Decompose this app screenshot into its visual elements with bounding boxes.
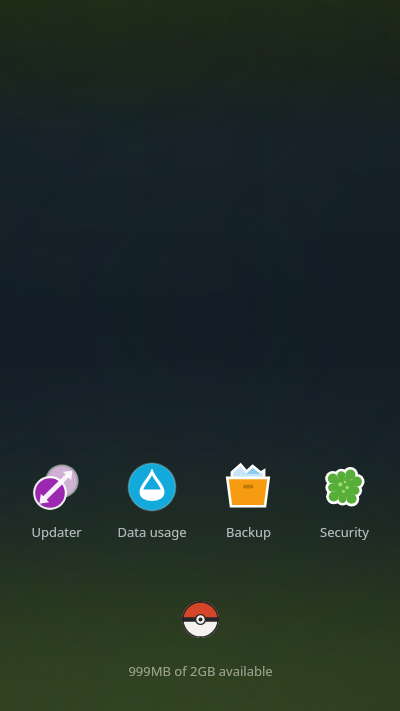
button[interactable]: Backup [204, 457, 292, 541]
staticText: Backup [226, 523, 271, 541]
button[interactable]: Open app drawer [178, 597, 222, 641]
staticText: Data usage [117, 523, 187, 541]
button[interactable]: Data usage [108, 457, 196, 541]
button[interactable]: Updater [12, 457, 100, 541]
staticText: Updater [31, 523, 82, 541]
button[interactable]: Security [300, 457, 388, 541]
staticText: Security [320, 523, 369, 541]
staticText: 999MB of 2GB available [128, 662, 273, 680]
